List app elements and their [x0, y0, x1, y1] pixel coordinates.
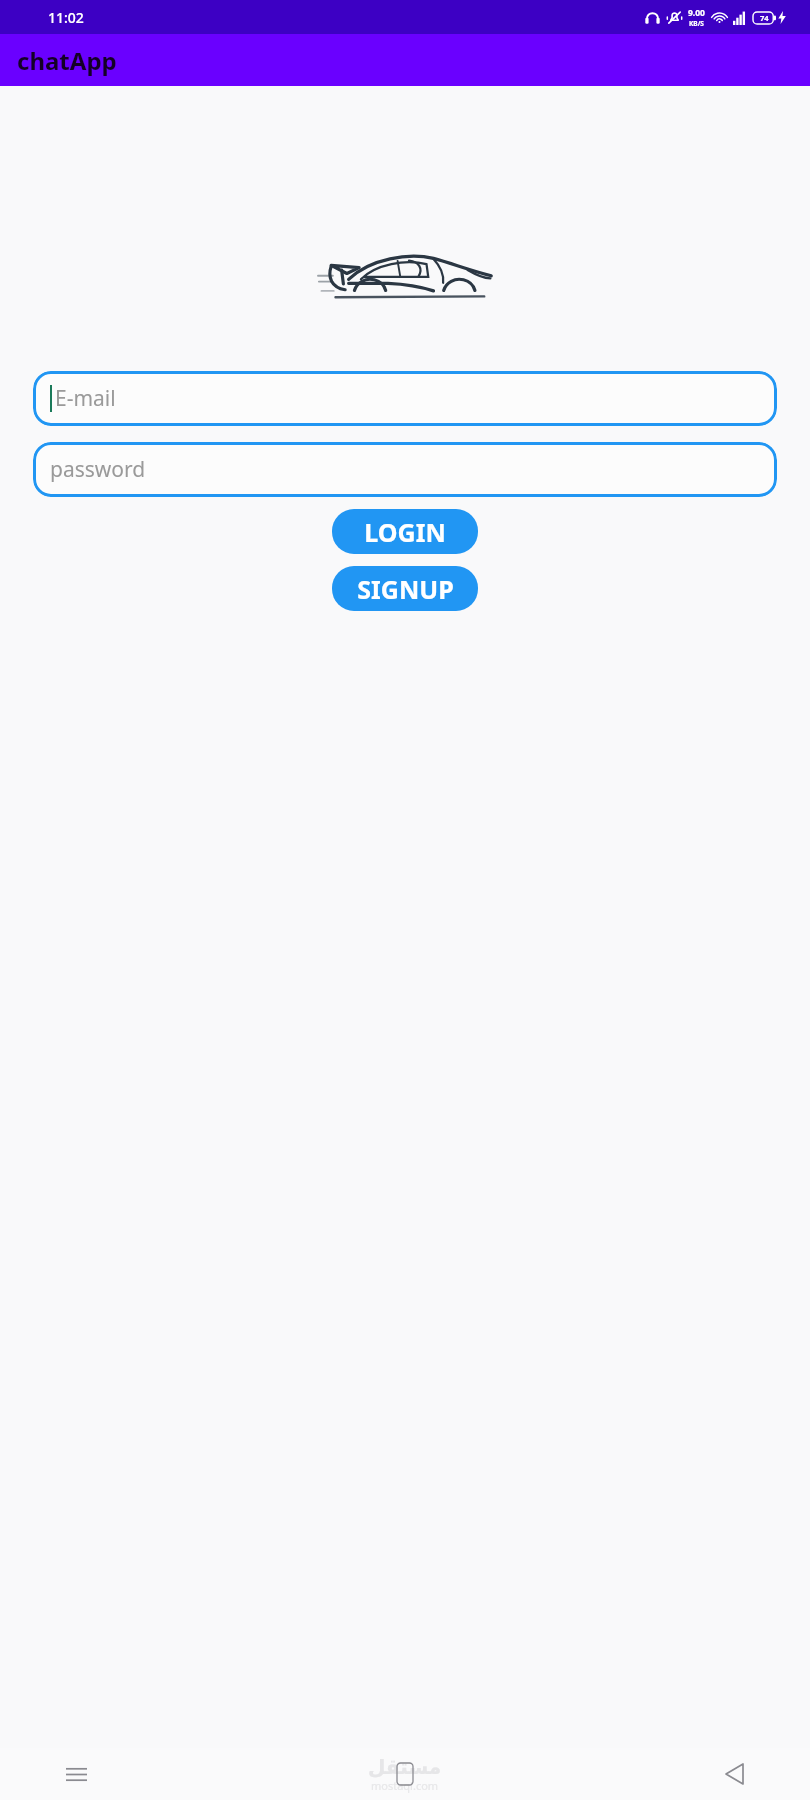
staticText: chatApp — [17, 44, 117, 77]
staticText: LOGIN — [364, 515, 446, 549]
staticText: 74 — [760, 13, 769, 23]
button[interactable]: SIGNUP — [332, 566, 478, 611]
staticText: مستقل — [368, 1755, 442, 1778]
button[interactable]: LOGIN — [332, 509, 478, 554]
staticText: password — [50, 455, 146, 484]
button[interactable]: E-mail — [33, 371, 777, 426]
staticText: mostaql.com — [371, 1778, 439, 1793]
button[interactable]: Back — [712, 1752, 756, 1796]
button[interactable]: Recents — [54, 1752, 98, 1796]
staticText: SIGNUP — [357, 572, 454, 606]
button[interactable]: Home — [383, 1752, 427, 1796]
staticText: 11:02 — [48, 8, 84, 27]
staticText: E-mail — [55, 384, 116, 413]
staticText: 9.00 — [688, 7, 705, 19]
button[interactable]: password — [33, 442, 777, 497]
staticText: KB/S — [689, 19, 704, 28]
